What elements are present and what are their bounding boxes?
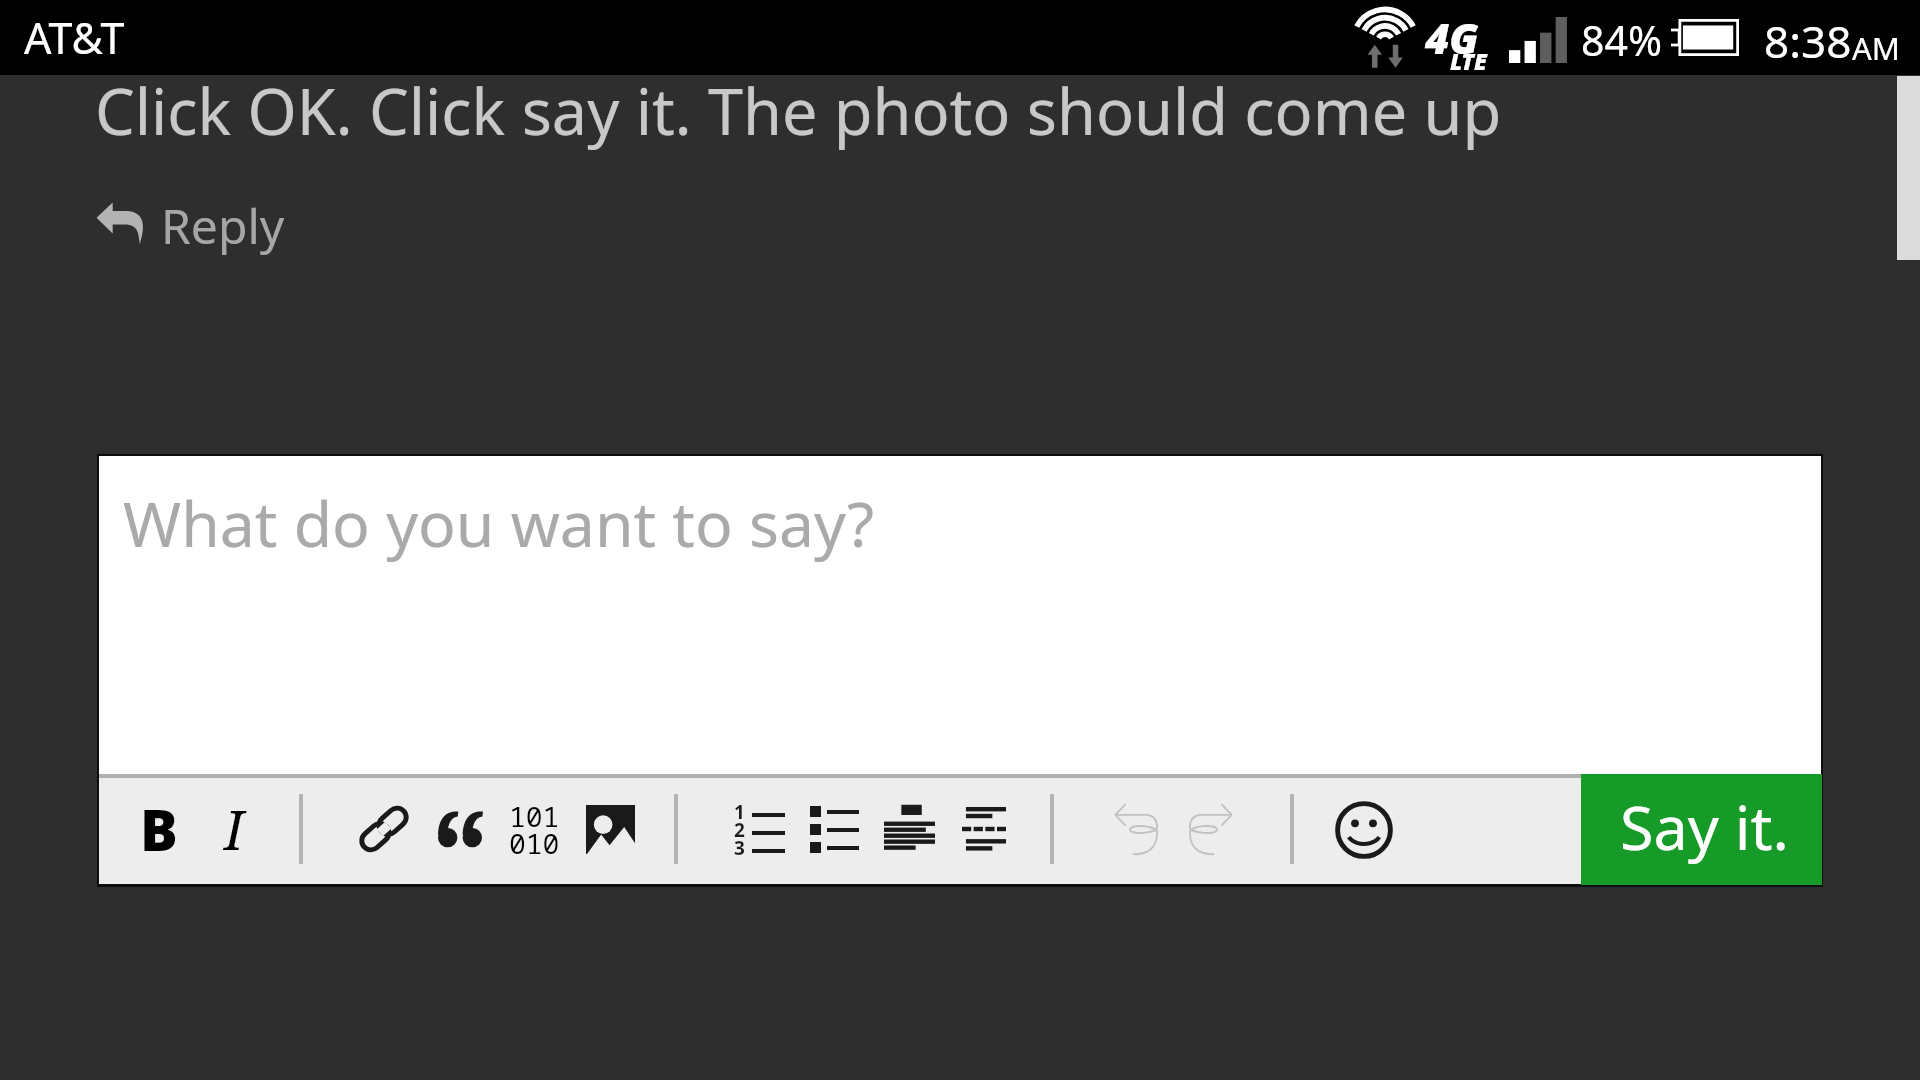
staticText: Say it.	[1620, 785, 1789, 868]
staticText: AM	[1852, 27, 1900, 69]
staticText: 4G	[1425, 9, 1479, 66]
button[interactable]: Indent	[950, 774, 1018, 884]
staticText: I	[224, 792, 244, 866]
staticText: 84%	[1581, 12, 1662, 68]
staticText: LTE	[1450, 45, 1487, 76]
button[interactable]: Say it.	[1581, 774, 1822, 885]
staticText: What do you want to say?	[123, 480, 875, 565]
button[interactable]: Bold	[127, 774, 191, 884]
button[interactable]: Italic	[202, 774, 266, 884]
button[interactable]: Emoji	[1330, 775, 1398, 885]
button[interactable]: Click OK. Click say it. The photo should…	[0, 75, 1896, 180]
button[interactable]: Bulleted list	[800, 774, 868, 884]
button[interactable]: Align	[875, 774, 943, 884]
staticText: B	[140, 791, 178, 867]
button[interactable]: Numbered list	[724, 774, 792, 884]
button[interactable]: Redo	[1177, 775, 1245, 885]
staticText: 1	[734, 799, 745, 825]
staticText: Reply	[161, 193, 285, 258]
staticText: AT&T	[24, 8, 125, 67]
button[interactable]: Blockquote	[426, 773, 494, 883]
staticText: Click OK. Click say it. The photo should…	[95, 68, 1502, 154]
staticText: 8:38	[1764, 11, 1852, 71]
staticText: 3	[734, 835, 745, 861]
button[interactable]: Code block	[502, 774, 566, 884]
staticText: 101 010	[509, 797, 560, 862]
button[interactable]: Insert image	[576, 774, 644, 884]
staticText: 2	[734, 817, 745, 843]
button[interactable]: Undo	[1101, 775, 1169, 885]
button[interactable]: Insert link	[350, 774, 418, 884]
button[interactable]: Reply	[92, 190, 292, 262]
